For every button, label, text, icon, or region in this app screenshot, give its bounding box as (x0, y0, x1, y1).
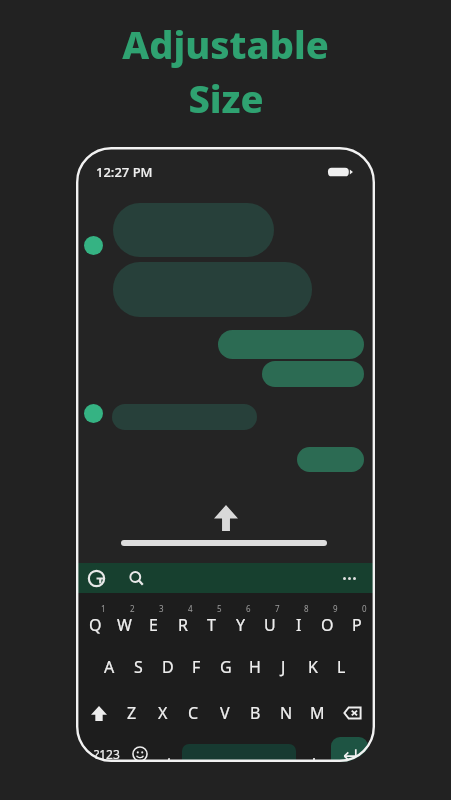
staticText: Size (188, 72, 264, 124)
staticText: Adjustable (122, 18, 329, 70)
staticText: . (312, 744, 317, 762)
staticText: X (158, 702, 168, 724)
button[interactable]: Resize keyboard (121, 540, 327, 546)
button[interactable] (113, 203, 274, 257)
button[interactable] (218, 330, 364, 359)
staticText: ?123 (94, 746, 120, 762)
button[interactable]: Contact avatar (84, 236, 103, 255)
button[interactable]: L (327, 650, 356, 684)
button[interactable]: 7 (255, 603, 284, 641)
staticText: G (220, 656, 232, 678)
staticText: H (249, 656, 261, 678)
staticText: L (337, 656, 346, 678)
staticText: B (250, 702, 261, 724)
staticText: 9 (333, 603, 338, 614)
staticText: I (296, 614, 302, 636)
button[interactable]: X (147, 696, 178, 730)
button[interactable]: B (240, 696, 271, 730)
staticText: J (281, 656, 286, 678)
button[interactable]: K (298, 650, 327, 684)
staticText: 12:27 PM (96, 163, 153, 181)
button[interactable]: F (182, 650, 211, 684)
staticText: Q (89, 614, 102, 636)
button[interactable]: H (240, 650, 269, 684)
staticText: 6 (246, 603, 251, 614)
button[interactable]: M (302, 696, 333, 730)
staticText: F (192, 656, 201, 678)
button[interactable]: 8 (284, 603, 313, 641)
button[interactable]: C (178, 696, 209, 730)
staticText: N (280, 702, 293, 724)
button[interactable] (112, 404, 257, 430)
button[interactable] (262, 361, 364, 387)
button[interactable] (113, 262, 312, 317)
staticText: S (134, 656, 143, 678)
button[interactable] (297, 447, 364, 472)
other: Battery (328, 165, 354, 179)
button[interactable]: A (95, 650, 124, 684)
button[interactable]: G (211, 650, 240, 684)
staticText: 3 (159, 603, 164, 614)
button[interactable]: N (271, 696, 302, 730)
button[interactable]: Space (182, 744, 296, 762)
button[interactable]: 3 (139, 603, 168, 641)
button[interactable]: ?123 (88, 739, 126, 762)
button[interactable]: Keyboard settings (88, 570, 105, 587)
other: Expand (214, 505, 238, 531)
staticText: 8 (304, 603, 309, 614)
button[interactable]: Search (129, 571, 144, 586)
button[interactable]: 1 (80, 603, 110, 641)
staticText: A (104, 656, 115, 678)
staticText: K (308, 656, 318, 678)
staticText: M (310, 702, 325, 724)
staticText: D (162, 656, 174, 678)
button[interactable]: Emoji (132, 746, 148, 762)
button[interactable]: D (153, 650, 182, 684)
staticText: W (117, 614, 132, 636)
button[interactable]: 2 (110, 603, 139, 641)
button[interactable]: J (269, 650, 298, 684)
staticText: R (178, 614, 188, 636)
button[interactable]: V (209, 696, 240, 730)
button[interactable]: 4 (168, 603, 197, 641)
staticText: , (167, 744, 172, 762)
button[interactable]: 5 (197, 603, 226, 641)
button[interactable]: . (304, 739, 324, 762)
staticText: 2 (130, 603, 135, 614)
button[interactable]: 0 (342, 603, 371, 641)
staticText: P (352, 614, 362, 636)
button[interactable]: Backspace (333, 696, 371, 730)
button[interactable]: S (124, 650, 153, 684)
button[interactable]: Contact avatar (84, 404, 103, 423)
button[interactable]: 9 (313, 603, 342, 641)
staticText: 1 (101, 603, 106, 614)
button[interactable]: Shift (80, 696, 117, 730)
staticText: 0 (362, 603, 367, 614)
button[interactable]: , (158, 739, 180, 762)
button[interactable]: Z (117, 696, 147, 730)
staticText: T (207, 614, 216, 636)
staticText: V (220, 702, 230, 724)
staticText: C (188, 702, 199, 724)
staticText: Y (236, 614, 246, 636)
staticText: E (149, 614, 158, 636)
staticText: 5 (217, 603, 222, 614)
button[interactable]: 6 (226, 603, 255, 641)
staticText: 7 (275, 603, 280, 614)
button[interactable]: Enter (331, 737, 368, 762)
button[interactable]: More options (342, 577, 357, 580)
staticText: Z (127, 702, 137, 724)
staticText: 4 (188, 603, 193, 614)
staticText: U (264, 614, 276, 636)
staticText: O (321, 614, 334, 636)
